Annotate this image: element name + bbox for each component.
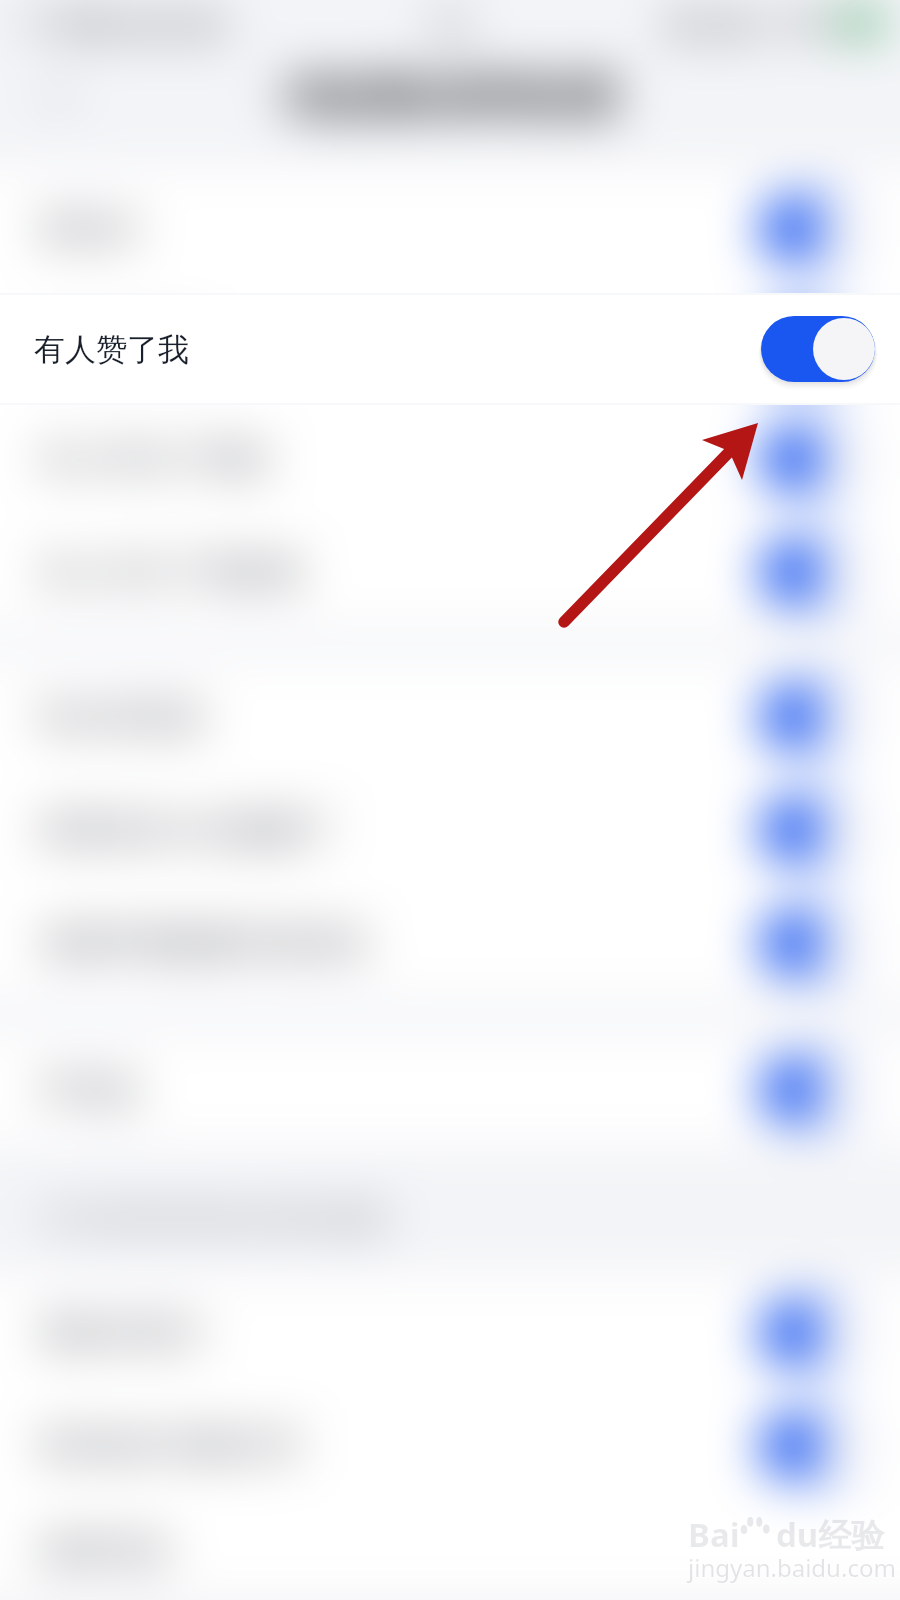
staticText: jingyan.baidu.com	[688, 1551, 896, 1584]
button[interactable]: 有人关注了我的账	[0, 515, 900, 628]
staticText: 通知栏显示	[40, 1312, 600, 1354]
staticText: 13:56▣⬚▣⬚▣⬚	[18, 4, 241, 41]
button[interactable]: 夜间免打扰模式开	[0, 1389, 900, 1502]
staticText: 直播开播提醒消息推送	[40, 922, 600, 964]
button[interactable]: Toggle switch	[761, 684, 875, 750]
button[interactable]: 新朋友加入的提醒了	[0, 773, 900, 886]
button[interactable]: Toggle switch	[761, 1300, 875, 1366]
staticText: 新粉丝	[40, 208, 600, 250]
button[interactable]: Toggle switch	[761, 316, 875, 382]
staticText: 有人关注了我的账	[40, 551, 600, 593]
button[interactable]: 直播开播提醒消息推送	[0, 886, 900, 999]
staticText: 消息通知管理设置	[282, 72, 618, 125]
button[interactable]: 声音提	[0, 1033, 900, 1146]
button[interactable]: 有人评论了我的	[0, 402, 900, 515]
button[interactable]: 私信消息提	[0, 660, 900, 773]
staticText: 声音提	[40, 1069, 600, 1111]
staticText: 私信消息提	[40, 696, 600, 738]
button[interactable]: Toggle switch	[761, 539, 875, 605]
staticText: 锁屏消息	[40, 1530, 600, 1572]
button[interactable]: Toggle switch	[761, 1413, 875, 1479]
button[interactable]: 有人赞了我	[0, 293, 900, 405]
button[interactable]: 通知栏显示	[0, 1276, 900, 1389]
staticText: 夜间免打扰模式开	[40, 1425, 600, 1467]
staticText: 有人赞了我	[34, 330, 761, 369]
button[interactable]: Toggle switch	[761, 1057, 875, 1123]
button[interactable]: Toggle switch	[761, 196, 875, 262]
staticText: 新朋友加入的提醒了	[40, 809, 600, 851]
button[interactable]: 锁屏消息	[0, 1502, 900, 1600]
button[interactable]: Toggle switch	[761, 426, 875, 492]
staticText: Bai	[688, 1512, 740, 1557]
staticText: 有人赞了我	[40, 325, 600, 367]
staticText: 有人评论了我的	[40, 438, 600, 480]
button[interactable]: Toggle switch	[761, 910, 875, 976]
button[interactable]: 有人赞了我	[0, 289, 900, 402]
button[interactable]: Toggle switch	[761, 313, 875, 379]
staticText: ▣⬚▣⬚ 68%	[670, 4, 833, 41]
staticText: du经验	[776, 1512, 885, 1557]
button[interactable]: 新粉丝	[0, 169, 900, 289]
button[interactable]: Toggle switch	[761, 797, 875, 863]
